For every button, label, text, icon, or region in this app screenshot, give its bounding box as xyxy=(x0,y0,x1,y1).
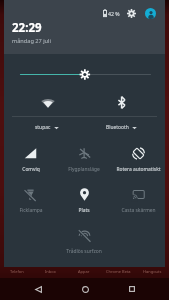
button[interactable]: Rotera automatiskt xyxy=(111,133,165,174)
button[interactable]: User account xyxy=(145,8,156,19)
staticText: Trådlös surfzon xyxy=(66,248,102,255)
staticText: Comviq xyxy=(22,166,40,173)
staticText: Rotera automatiskt xyxy=(116,166,161,173)
button[interactable]: Bluetooth xyxy=(92,90,150,132)
button[interactable]: Back xyxy=(25,278,51,300)
staticText: Flygplansläge xyxy=(68,166,100,173)
button[interactable]: Recent apps xyxy=(119,278,145,300)
button[interactable]: Home xyxy=(72,278,98,300)
staticText: Inbox xyxy=(45,269,56,274)
button[interactable]: Flygplansläge xyxy=(57,133,111,174)
staticText: Chrome Beta xyxy=(106,269,131,274)
staticText: Hangouts xyxy=(143,269,162,274)
button[interactable]: Comviq xyxy=(4,133,57,174)
button[interactable]: Plats xyxy=(57,174,111,215)
staticText: Plats xyxy=(78,207,90,214)
staticText: 22:29 xyxy=(12,20,42,36)
button[interactable]: Trådlös surfzon xyxy=(57,215,111,256)
button[interactable]: Wi-Fi stupac xyxy=(18,90,76,132)
staticText: Ficklampa xyxy=(19,207,43,214)
staticText: Bluetooth xyxy=(106,124,129,131)
staticText: Casta skärmen xyxy=(121,207,156,214)
staticText: måndag 27 juli xyxy=(12,37,51,45)
staticText: Appar xyxy=(78,269,90,274)
staticText: stupac xyxy=(35,124,51,131)
button[interactable]: Casta skärmen xyxy=(111,174,165,215)
button[interactable]: Ficklampa xyxy=(4,174,57,215)
staticText: 42 % xyxy=(108,10,120,17)
button[interactable]: Settings xyxy=(127,9,136,18)
staticText: Telefon xyxy=(10,269,24,274)
button[interactable]: Brightness xyxy=(4,62,165,86)
